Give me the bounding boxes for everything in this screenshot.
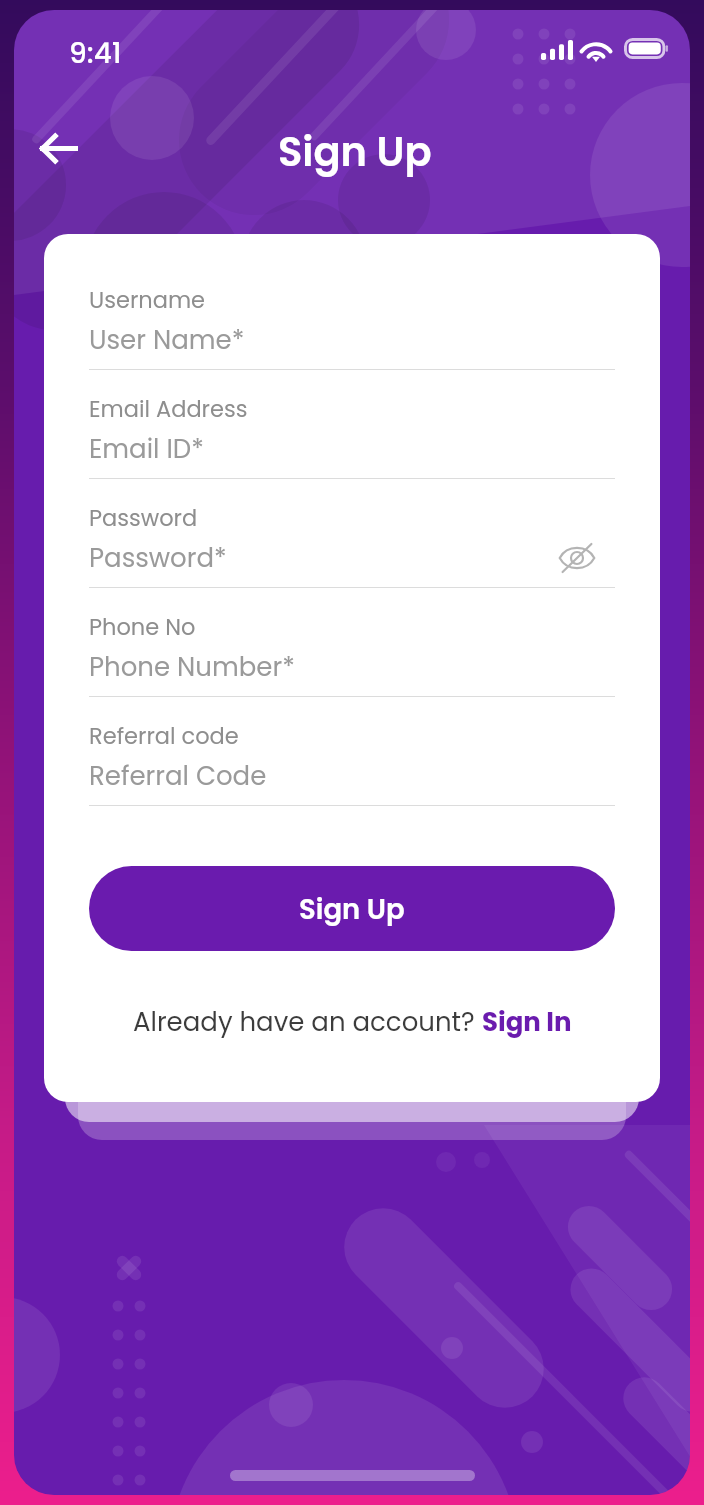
staticText: Referral code	[89, 720, 239, 751]
button[interactable]: Back	[27, 116, 91, 180]
staticText: Referral Code	[89, 758, 615, 794]
staticText: User Name*	[89, 322, 615, 358]
other: Show password	[559, 544, 595, 572]
staticText: Phone Number*	[89, 649, 615, 685]
button[interactable]: Sign In	[482, 1004, 572, 1040]
staticText: Sign Up	[299, 890, 405, 928]
staticText: Already have an account?	[133, 1004, 482, 1040]
staticText: Password*	[89, 540, 559, 576]
staticText: Email ID*	[89, 431, 615, 467]
staticText: Username	[89, 284, 206, 315]
staticText: Email Address	[89, 393, 248, 424]
staticText: Password	[89, 502, 198, 533]
staticText: Sign Up	[278, 124, 432, 180]
staticText: 9:41	[69, 34, 122, 73]
button[interactable]: Sign Up	[89, 866, 615, 951]
staticText: Phone No	[89, 611, 196, 642]
